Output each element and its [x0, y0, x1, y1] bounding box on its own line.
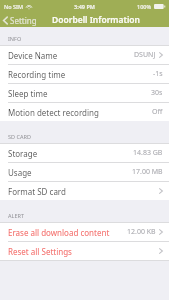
button[interactable]: Device Name — [0, 46, 169, 65]
staticText: Storage — [8, 148, 38, 159]
staticText: No SIM — [4, 3, 24, 10]
staticText: Device Name — [8, 50, 58, 61]
staticText: 30s — [151, 88, 163, 98]
staticText: ALERT — [8, 212, 24, 219]
staticText: Doorbell Information — [52, 14, 141, 26]
staticText: Recording time — [8, 69, 66, 80]
staticText: Reset all Settings — [8, 246, 72, 257]
staticText: 100% — [137, 3, 152, 10]
staticText: -1s — [153, 69, 163, 79]
button[interactable]: Sleep time — [0, 84, 169, 103]
staticText: Format SD card — [8, 186, 66, 197]
staticText: Erase all download content — [8, 227, 110, 238]
staticText: INFO — [8, 35, 22, 42]
staticText: 17.00 MB — [132, 167, 163, 177]
staticText: DSUNJ — [134, 50, 156, 60]
staticText: 3:49 PM — [74, 3, 95, 10]
staticText: Sleep time — [8, 88, 48, 99]
staticText: Setting — [10, 15, 37, 26]
staticText: Off — [152, 107, 163, 117]
button[interactable]: Reset all Settings — [0, 242, 169, 260]
button[interactable]: Storage — [0, 144, 169, 163]
staticText: Usage — [8, 167, 32, 178]
button[interactable]: Motion detect recording — [0, 103, 169, 121]
button[interactable]: Setting — [0, 14, 41, 27]
button[interactable]: Recording time — [0, 65, 169, 84]
staticText: 14.83 GB — [133, 148, 163, 158]
staticText: SD CARD — [8, 133, 31, 140]
staticText: 12.00 KB — [127, 227, 156, 237]
button[interactable]: Erase all download content — [0, 223, 169, 242]
staticText: Motion detect recording — [8, 107, 99, 118]
button[interactable]: Usage — [0, 163, 169, 182]
button[interactable]: Format SD card — [0, 182, 169, 200]
